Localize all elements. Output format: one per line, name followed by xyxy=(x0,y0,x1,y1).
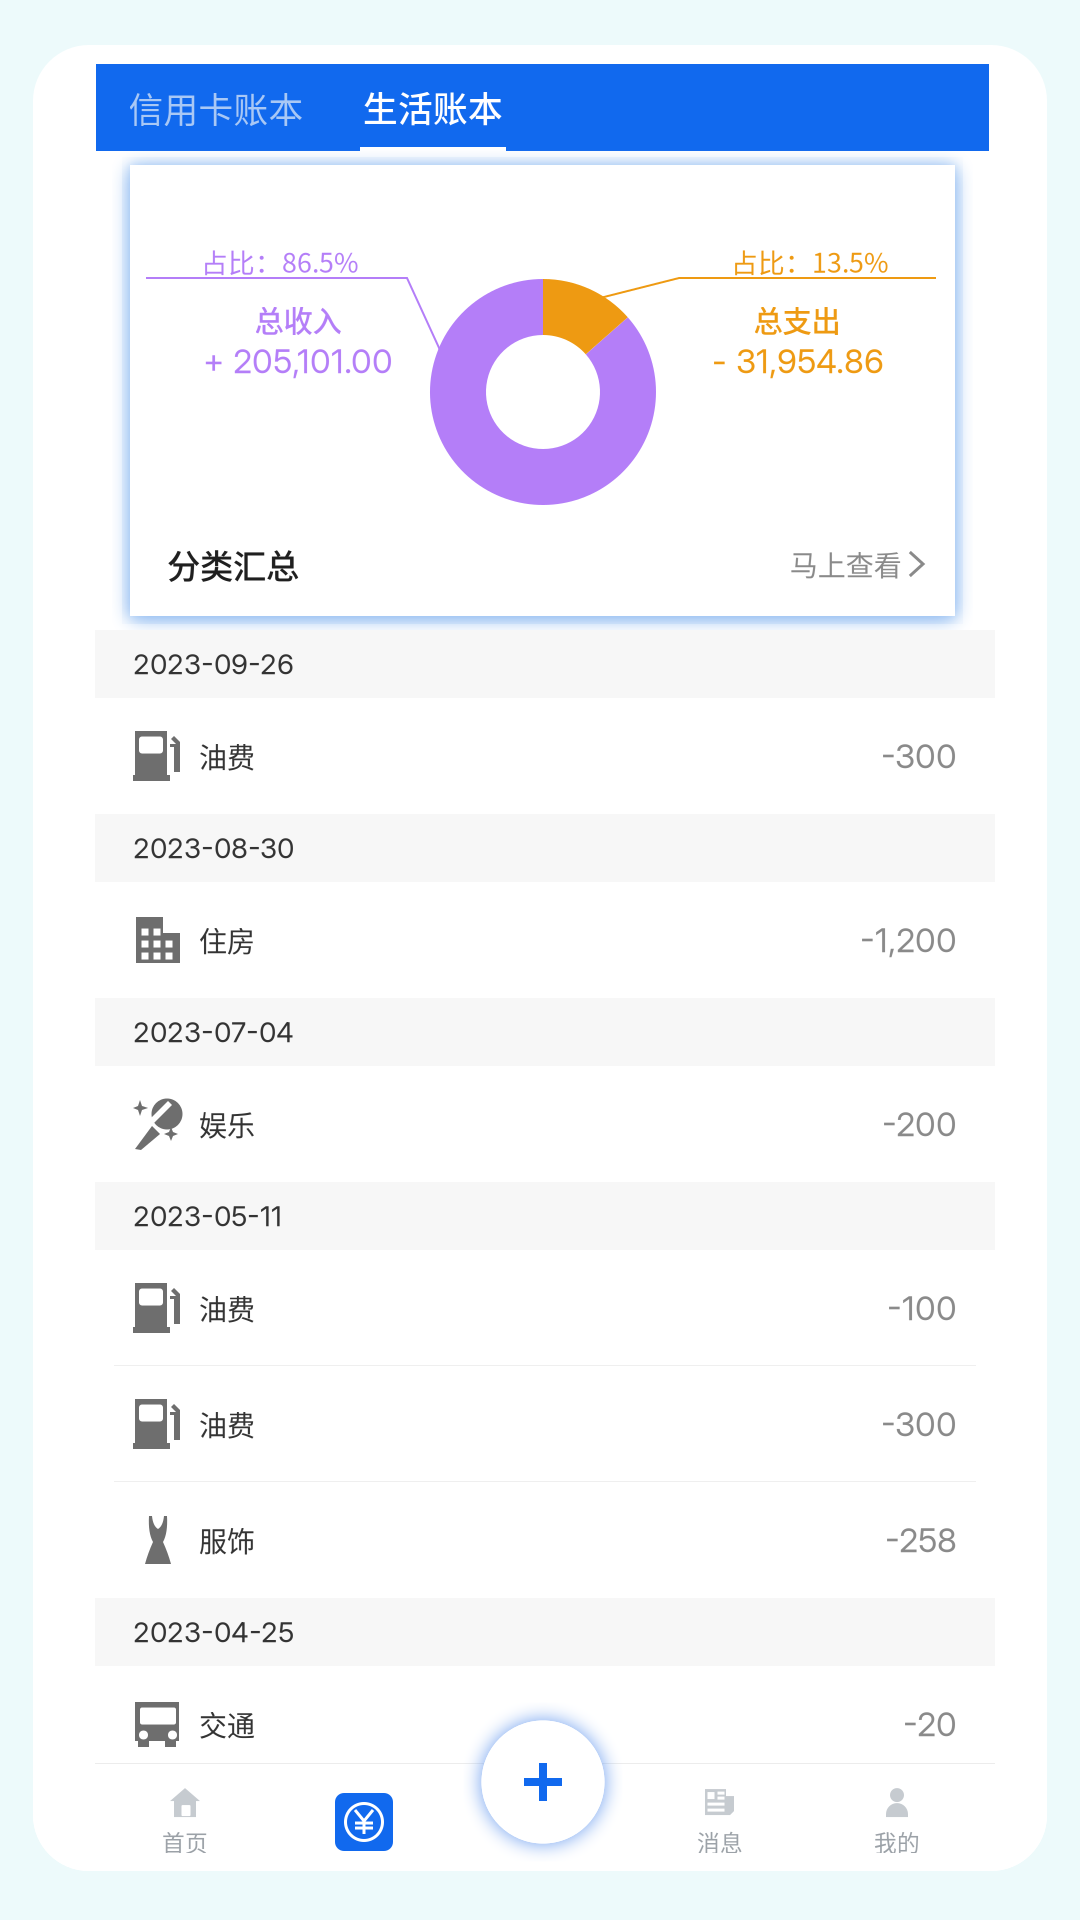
staticText: -100 xyxy=(887,1288,957,1328)
button[interactable]: 住房 xyxy=(95,882,995,998)
staticText: 油费 xyxy=(199,1404,255,1444)
staticText: 分类汇总 xyxy=(167,540,299,588)
staticText: -1,200 xyxy=(860,920,957,960)
button[interactable]: 交通 xyxy=(95,1666,995,1782)
staticText: + 205,101.00 xyxy=(203,341,393,381)
button[interactable]: 信用卡账本 xyxy=(96,78,336,138)
button[interactable]: 我的 xyxy=(842,1785,952,1861)
staticText: 住房 xyxy=(199,920,255,960)
button[interactable]: 消息 xyxy=(665,1785,775,1861)
staticText: 信用卡账本 xyxy=(128,83,303,133)
staticText: 交通 xyxy=(199,1704,255,1744)
staticText: 油费 xyxy=(199,736,255,776)
staticText: 占比：13.5% xyxy=(731,242,889,280)
staticText: 2023-04-25 xyxy=(133,1615,294,1649)
staticText: 2023-07-04 xyxy=(133,1015,294,1049)
staticText: - 31,954.86 xyxy=(712,341,884,381)
button[interactable]: 油费 xyxy=(95,698,995,814)
staticText: -20 xyxy=(903,1704,957,1744)
staticText: 生活账本 xyxy=(363,82,503,132)
staticText: 2023-09-26 xyxy=(133,647,294,681)
staticText: -300 xyxy=(881,736,957,776)
staticText: 油费 xyxy=(199,1288,255,1328)
button[interactable]: 分类汇总 xyxy=(130,512,955,616)
button[interactable]: 油费 xyxy=(95,1250,995,1366)
button[interactable]: 油费 xyxy=(95,1366,995,1482)
staticText: 总支出 xyxy=(753,298,840,340)
staticText: 总收入 xyxy=(254,298,341,340)
button[interactable]: 生活账本 xyxy=(343,75,523,139)
staticText: -300 xyxy=(881,1404,957,1444)
staticText: 消息 xyxy=(697,1825,743,1858)
staticText: 马上查看 xyxy=(790,544,902,584)
staticText: 2023-05-11 xyxy=(133,1199,282,1233)
staticText: 娱乐 xyxy=(199,1104,255,1144)
staticText: 占比：86.5% xyxy=(201,242,359,280)
button[interactable]: 添加 xyxy=(468,1707,618,1857)
staticText: 我的 xyxy=(874,1825,920,1858)
staticText: -258 xyxy=(885,1520,957,1560)
button[interactable]: 服饰 xyxy=(95,1482,995,1598)
button[interactable]: 娱乐 xyxy=(95,1066,995,1182)
staticText: -200 xyxy=(882,1104,957,1144)
button[interactable]: 账本 xyxy=(335,1793,393,1851)
staticText: 首页 xyxy=(162,1825,208,1858)
staticText: 2023-08-30 xyxy=(133,831,294,865)
button[interactable]: 首页 xyxy=(130,1785,240,1861)
staticText: 服饰 xyxy=(199,1520,255,1560)
